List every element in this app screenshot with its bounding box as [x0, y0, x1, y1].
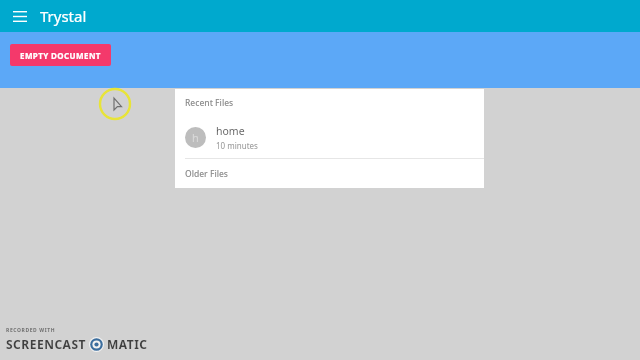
staticText: SCREENCAST — [6, 336, 86, 352]
staticText: EMPTY DOCUMENT — [20, 50, 101, 61]
button[interactable]: h — [175, 117, 484, 158]
staticText: Recent Files — [185, 97, 234, 109]
staticText: MATIC — [107, 336, 148, 352]
staticText: 10 minutes — [216, 140, 258, 151]
staticText: Trystal — [40, 6, 87, 26]
staticText: h — [192, 130, 199, 145]
button[interactable]: EMPTY DOCUMENT — [10, 44, 111, 66]
staticText: RECORDED WITH — [6, 327, 56, 334]
button[interactable]: Open navigation menu — [10, 6, 30, 26]
staticText: home — [216, 124, 245, 138]
staticText: Older Files — [185, 168, 229, 180]
